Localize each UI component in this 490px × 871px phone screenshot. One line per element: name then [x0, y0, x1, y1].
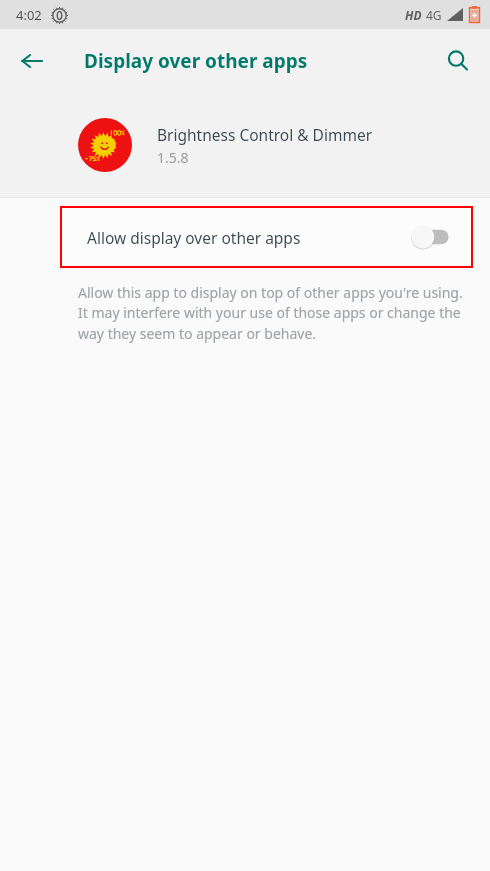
staticText: Brightness Control & Dimmer — [157, 124, 373, 145]
staticText: Allow this app to display on top of othe… — [78, 283, 470, 344]
button[interactable]: Back — [8, 37, 56, 85]
staticText: 1.5.8 — [157, 148, 189, 167]
staticText: 4G — [426, 7, 442, 23]
button[interactable]: Allow display over other apps toggle — [411, 224, 451, 250]
button[interactable]: Allow display over other apps — [60, 206, 473, 268]
staticText: Allow display over other apps — [87, 227, 411, 248]
staticText: Display over other apps — [84, 48, 308, 74]
staticText: 4:02 — [16, 6, 42, 24]
button[interactable]: Search — [434, 37, 482, 85]
staticText: HD — [405, 7, 422, 23]
